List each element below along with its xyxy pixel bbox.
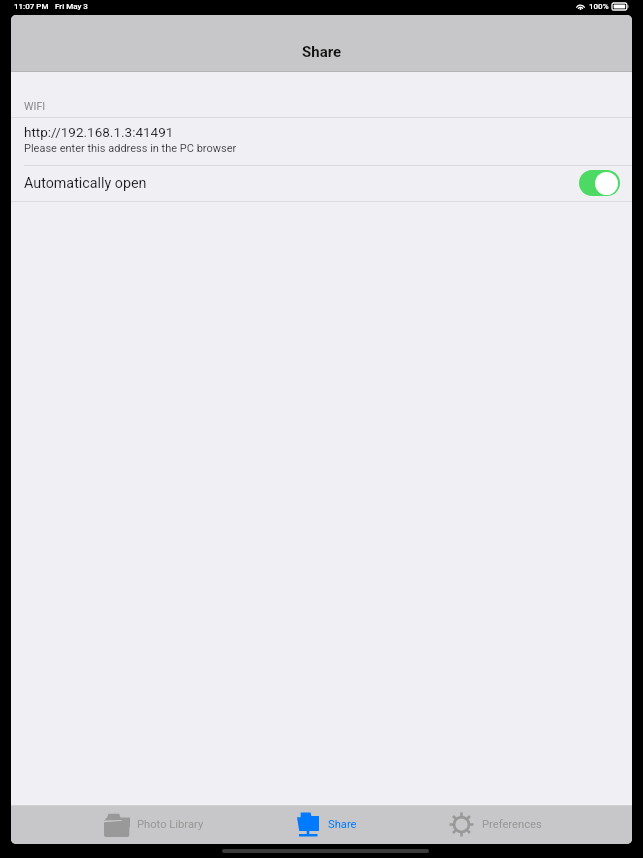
staticText: WIFI bbox=[24, 100, 46, 113]
button[interactable]: http://192.168.1.3:41491 bbox=[11, 118, 632, 165]
staticText: Share bbox=[328, 818, 357, 831]
button[interactable]: Photo Library bbox=[99, 805, 206, 844]
button[interactable]: Preferences bbox=[445, 805, 546, 844]
staticText: 11:07 PM bbox=[14, 2, 49, 11]
staticText: Photo Library bbox=[137, 818, 204, 831]
staticText: 100% bbox=[589, 2, 609, 11]
button[interactable]: Share bbox=[293, 805, 359, 844]
button[interactable]: Automatically open toggle bbox=[579, 170, 620, 196]
button[interactable]: Automatically open bbox=[11, 166, 632, 201]
staticText: Preferences bbox=[482, 818, 542, 831]
staticText: Automatically open bbox=[24, 175, 147, 192]
staticText: Share bbox=[302, 43, 342, 61]
staticText: http://192.168.1.3:41491 bbox=[24, 124, 174, 140]
staticText: Please enter this address in the PC brow… bbox=[24, 142, 237, 155]
staticText: Fri May 3 bbox=[55, 2, 88, 11]
